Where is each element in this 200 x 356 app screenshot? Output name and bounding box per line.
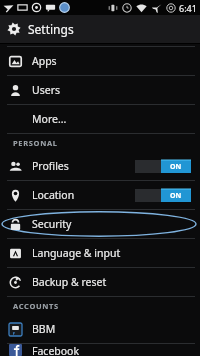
staticText: Apps <box>32 54 57 68</box>
button[interactable]: Backup & reset <box>0 268 200 296</box>
staticText: Facebook <box>32 344 80 356</box>
button[interactable]: Apps <box>0 47 200 75</box>
staticText: ON <box>170 162 182 172</box>
button[interactable]: BBM <box>0 315 200 343</box>
staticText: BBM <box>32 322 56 336</box>
staticText: ON <box>170 191 182 201</box>
button[interactable]: Toggle on <box>135 189 191 202</box>
button[interactable]: Language & input <box>0 239 200 267</box>
staticText: Security <box>32 217 72 231</box>
button[interactable]: Security <box>0 210 200 238</box>
button[interactable]: Profiles <box>0 152 200 180</box>
staticText: More… <box>32 112 67 126</box>
button[interactable]: More… <box>0 105 200 133</box>
button[interactable]: Facebook <box>0 344 200 356</box>
staticText: Location <box>32 188 75 202</box>
staticText: PERSONAL <box>13 138 58 148</box>
staticText: Backup & reset <box>32 275 107 289</box>
staticText: Language & input <box>32 246 121 260</box>
button[interactable]: Toggle on <box>135 160 191 173</box>
staticText: ACCOUNTS <box>13 301 59 311</box>
staticText: 6:41 <box>179 2 197 14</box>
button[interactable]: Location <box>0 181 200 209</box>
staticText: Profiles <box>32 159 69 173</box>
staticText: Users <box>32 83 60 97</box>
staticText: Settings <box>28 21 74 37</box>
button[interactable]: Users <box>0 76 200 104</box>
